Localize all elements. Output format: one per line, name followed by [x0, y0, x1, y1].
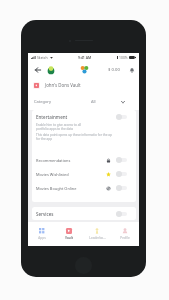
staticText: This data point opens up these informati…: [36, 133, 112, 141]
staticText: Recommendations: [36, 158, 71, 163]
button[interactable]: Back: [33, 65, 42, 74]
staticText: Apps: [38, 236, 46, 240]
staticText: Movies Bought Online: [36, 186, 77, 191]
staticText: $ 0.00: [108, 67, 120, 73]
button[interactable]: Recommendations: [32, 153, 136, 167]
staticText: Entertainment: [36, 114, 68, 120]
button[interactable]: Select category: [119, 98, 127, 106]
staticText: John's Dons Vault: [45, 82, 81, 88]
staticText: Enable him to give access to all portfol…: [36, 123, 81, 131]
button[interactable]: Vault: [55, 222, 83, 246]
staticText: Leaderbo...: [89, 236, 106, 240]
staticText: Sketch: [37, 55, 48, 60]
staticText: All: [91, 99, 96, 104]
button[interactable]: $ 0.00: [108, 67, 120, 73]
button[interactable]: Profile: [111, 222, 139, 246]
button[interactable]: Toggle: [116, 114, 127, 120]
staticText: 9:41 AM: [78, 55, 92, 60]
button[interactable]: Toggle: [116, 171, 127, 177]
button[interactable]: Movies Wishlisted: [32, 167, 136, 181]
button[interactable]: Apps: [80, 65, 89, 74]
button[interactable]: Toggle: [116, 185, 127, 191]
staticText: Services: [36, 211, 54, 217]
staticText: Category: [34, 99, 52, 104]
button[interactable]: Notifications: [127, 65, 136, 74]
staticText: Movies Wishlisted: [36, 172, 69, 177]
button[interactable]: Toggle: [116, 157, 127, 163]
button[interactable]: App: [47, 66, 55, 74]
button[interactable]: Toggle: [116, 211, 127, 217]
button[interactable]: Apps: [28, 222, 55, 246]
staticText: 100%: [119, 55, 128, 60]
staticText: Vault: [65, 236, 73, 240]
button[interactable]: Movies Bought Online: [32, 181, 136, 195]
staticText: Profile: [120, 236, 130, 240]
button[interactable]: Leaderbo...: [83, 222, 111, 246]
